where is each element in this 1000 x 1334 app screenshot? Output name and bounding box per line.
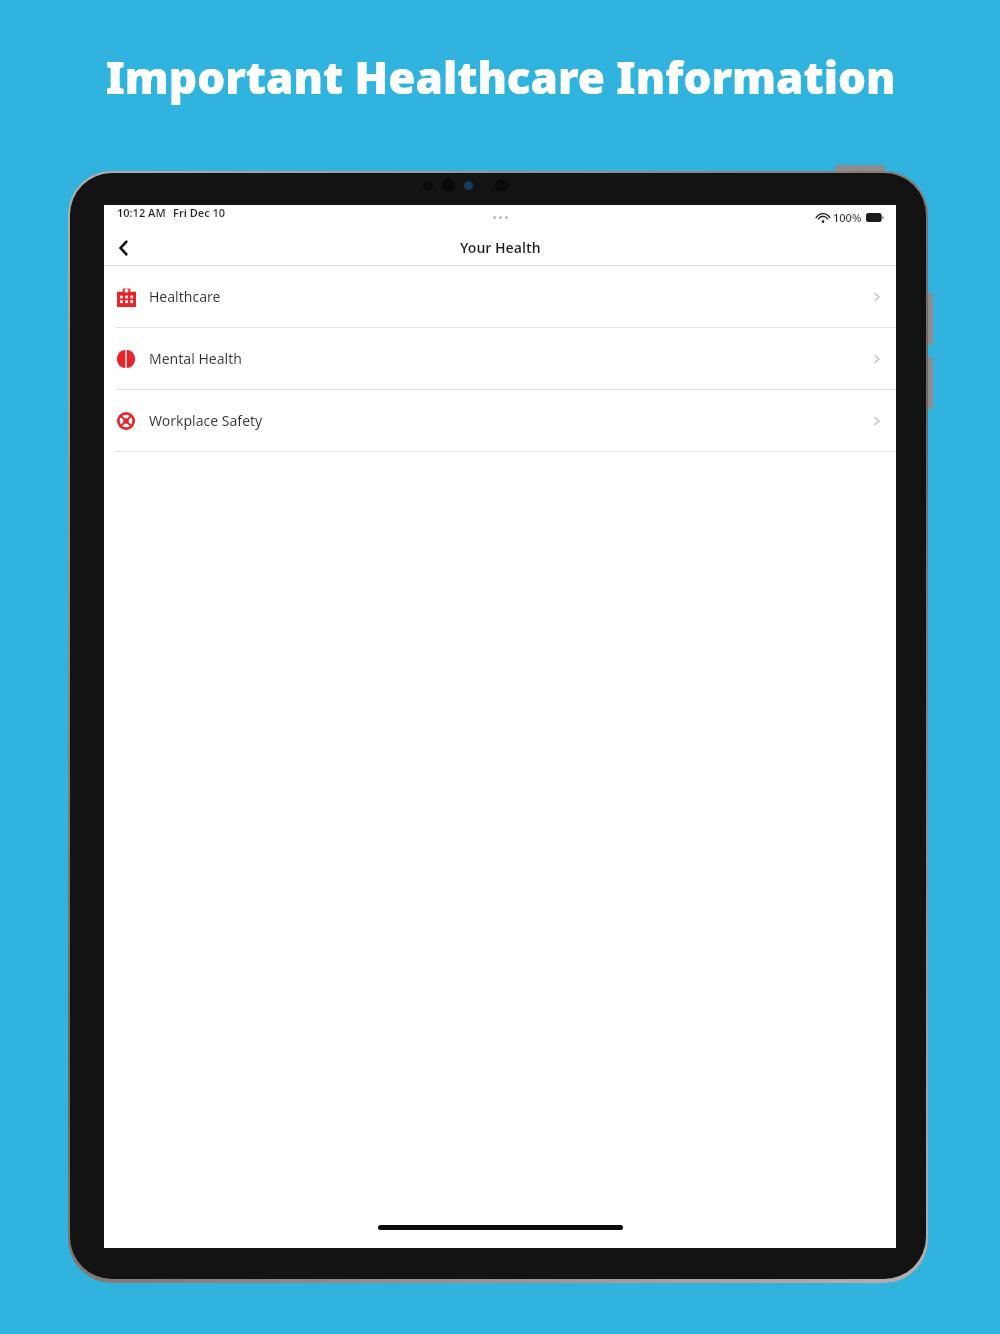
staticText: Healthcare bbox=[149, 287, 221, 306]
button[interactable]: Workplace Safety bbox=[104, 390, 896, 451]
staticText: Fri Dec 10 bbox=[173, 205, 226, 220]
button[interactable]: Healthcare bbox=[104, 266, 896, 327]
staticText: 100% bbox=[833, 210, 862, 225]
button[interactable]: Mental Health bbox=[104, 328, 896, 389]
staticText: Workplace Safety bbox=[149, 411, 263, 430]
staticText: 10:12 AM bbox=[117, 205, 166, 220]
button[interactable]: Back bbox=[104, 230, 144, 265]
staticText: Mental Health bbox=[149, 349, 242, 368]
staticText: Your Health bbox=[460, 238, 541, 257]
staticText: Important Healthcare Information bbox=[105, 47, 896, 107]
